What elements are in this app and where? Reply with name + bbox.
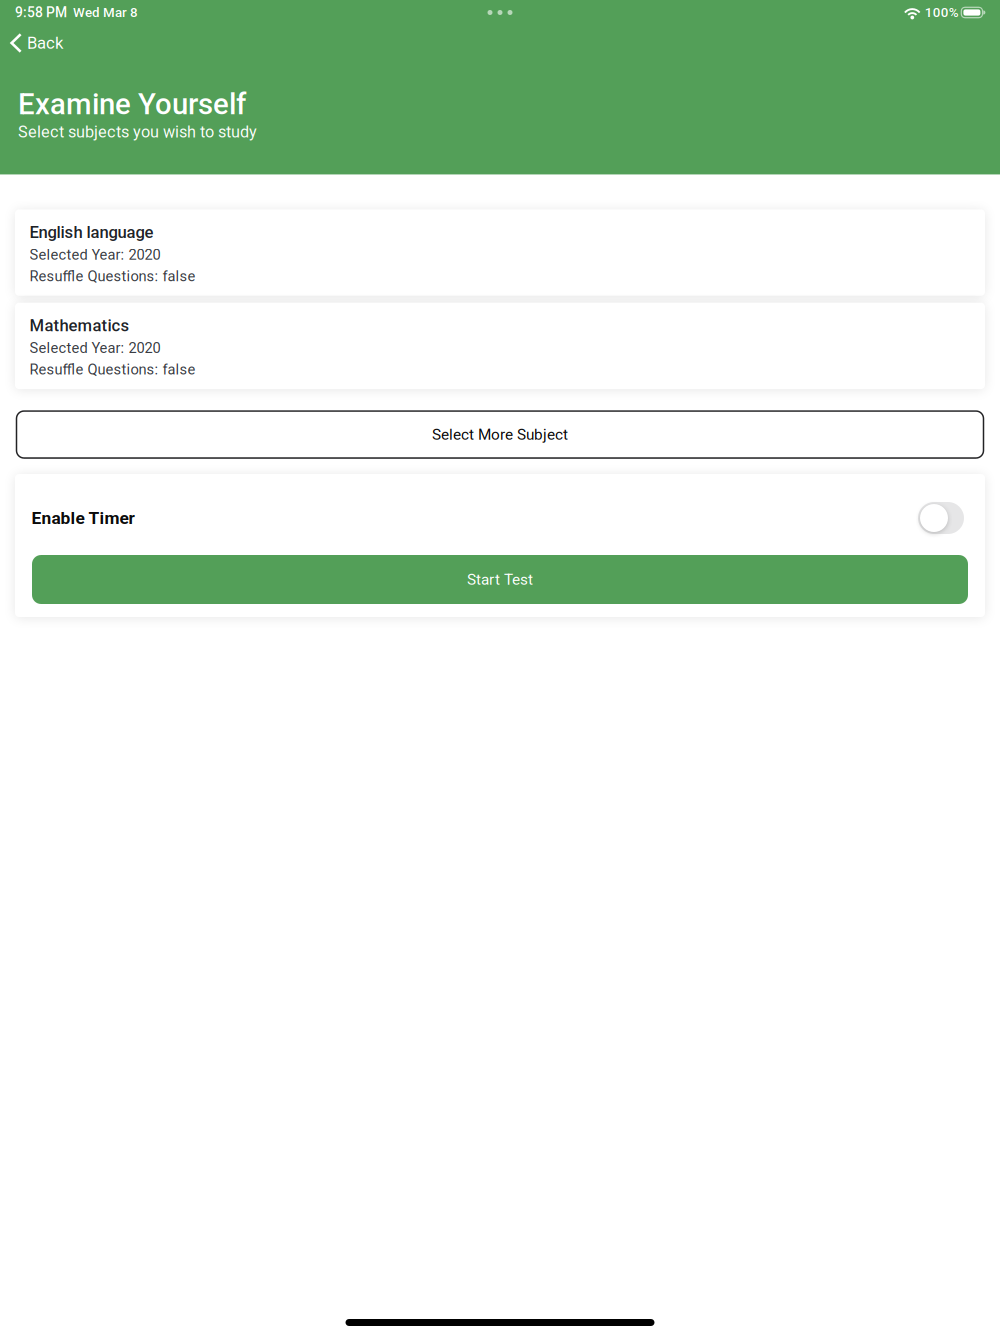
- staticText: Selected Year: 2020: [29, 339, 160, 357]
- staticText: Select subjects you wish to study: [18, 122, 257, 141]
- staticText: Resuffle Questions: false: [29, 361, 195, 378]
- staticText: Examine Yourself: [18, 87, 246, 121]
- button[interactable]: Enable Timer: [918, 502, 964, 534]
- staticText: Resuffle Questions: false: [29, 268, 195, 285]
- button[interactable]: Mathematics: [15, 303, 985, 389]
- staticText: Start Test: [467, 570, 533, 588]
- staticText: Wed Mar 8: [73, 5, 138, 20]
- button[interactable]: Select More Subject: [15, 411, 985, 458]
- staticText: Selected Year: 2020: [29, 246, 160, 263]
- staticText: 100%: [925, 5, 959, 20]
- button[interactable]: Back: [0, 30, 71, 56]
- staticText: English language: [29, 222, 153, 242]
- staticText: Mathematics: [29, 316, 129, 335]
- staticText: 9:58 PM: [15, 4, 67, 21]
- staticText: Select More Subject: [432, 426, 568, 444]
- staticText: Back: [27, 33, 63, 53]
- button[interactable]: English language: [15, 209, 985, 296]
- staticText: Enable Timer: [31, 508, 134, 528]
- button[interactable]: Start Test: [32, 555, 968, 604]
